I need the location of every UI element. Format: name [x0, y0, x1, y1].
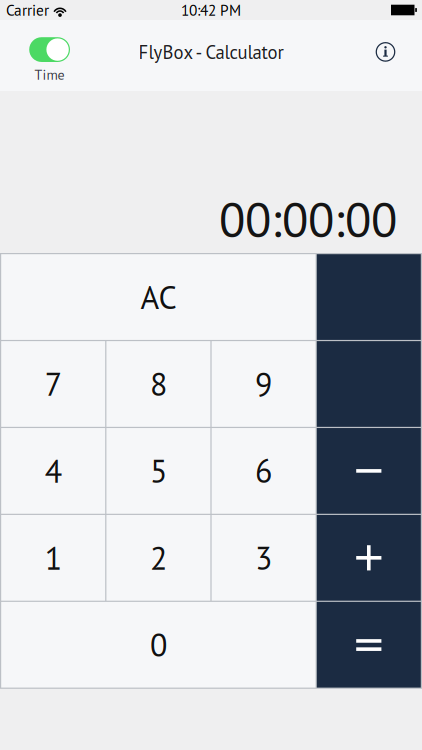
staticText: 5 — [150, 450, 167, 492]
button[interactable]: 9 — [212, 341, 316, 427]
staticText: 3 — [255, 537, 272, 578]
button[interactable]: AC — [1, 254, 316, 340]
button[interactable]: 8 — [106, 341, 210, 427]
staticText: 10:42 PM — [181, 0, 241, 20]
staticText: 1 — [45, 537, 62, 578]
button[interactable]: Time mode toggle — [29, 20, 70, 91]
button[interactable]: 7 — [1, 341, 105, 427]
button[interactable]: 3 — [212, 515, 316, 601]
button[interactable]: 2 — [106, 515, 210, 601]
button[interactable]: 6 — [212, 428, 316, 514]
button[interactable]: Minus — [317, 428, 421, 514]
staticText: 2 — [150, 537, 167, 578]
staticText: 6 — [255, 450, 272, 492]
staticText: Carrier — [6, 0, 49, 20]
staticText: AC — [140, 276, 176, 318]
button[interactable]: Plus — [317, 515, 421, 601]
button[interactable]: 5 — [106, 428, 210, 514]
button[interactable] — [317, 341, 421, 427]
staticText: Time — [35, 65, 65, 84]
staticText: FlyBox - Calculator — [138, 40, 283, 64]
button[interactable]: Equals — [317, 602, 421, 688]
button[interactable]: 0 — [1, 602, 316, 688]
button[interactable]: Info — [363, 20, 407, 91]
button[interactable]: 4 — [1, 428, 105, 514]
button[interactable] — [317, 254, 421, 340]
button[interactable]: 1 — [1, 515, 105, 601]
staticText: 7 — [45, 363, 62, 405]
staticText: 00:00:00 — [219, 187, 397, 250]
staticText: 0 — [150, 624, 167, 665]
staticText: 4 — [45, 450, 62, 492]
staticText: 8 — [150, 363, 167, 405]
staticText: 9 — [255, 363, 272, 405]
